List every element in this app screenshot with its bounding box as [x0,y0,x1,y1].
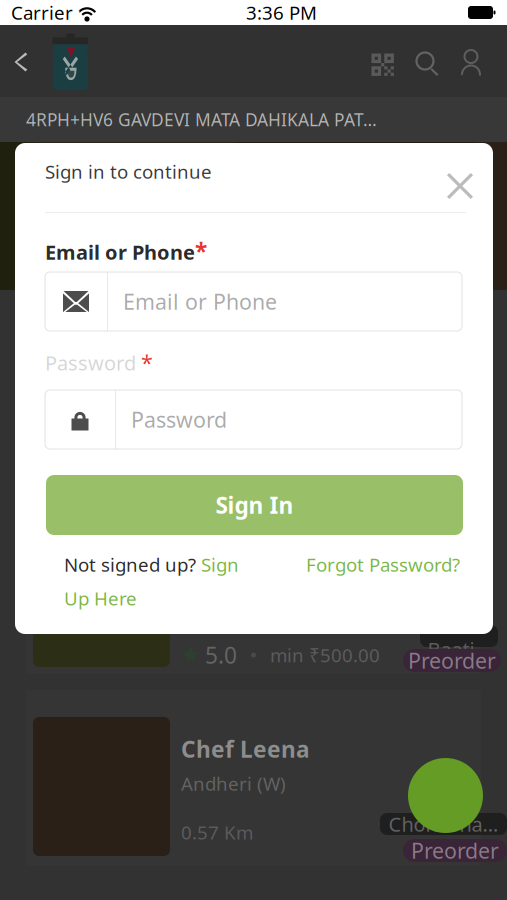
staticText: Email or Phone [45,239,195,265]
button[interactable]: Close [447,173,473,199]
staticText: Password [45,349,141,376]
button[interactable]: Forgot Password? [306,552,460,577]
button[interactable]: Back [7,41,35,83]
staticText: Password [131,405,227,434]
button[interactable]: Scan QR code [363,45,403,85]
staticText: Preorder [408,646,496,675]
button[interactable]: Search [406,43,450,85]
staticText: Chole Bha… [388,811,498,837]
staticText: 3:36 PM [246,0,317,25]
staticText: * [195,236,207,266]
staticText: 5.0 [205,640,237,670]
button[interactable]: Add [408,758,483,833]
button[interactable]: Account [452,42,490,84]
staticText: Sign In [215,490,293,520]
staticText: Not signed up? [64,552,201,577]
staticText: min ₹500.00 [270,643,380,667]
staticText: Forgot Password? [306,552,460,577]
staticText: 0.57 Km [181,820,253,845]
staticText: Chef Leena [181,734,310,764]
staticText: 4RPH+HV6 GAVDEVI MATA DAHIKALA PAT… [26,108,377,131]
staticText: Email or Phone [123,287,277,316]
staticText: Up Here [64,586,137,611]
staticText: Sign [201,552,239,577]
staticText: Preorder [411,836,499,865]
button[interactable]: Sign In [46,475,463,535]
staticText: Sign in to continue [45,159,212,184]
staticText: Carrier [11,0,73,25]
button[interactable]: Up Here [64,586,137,611]
staticText: * [141,348,153,376]
button[interactable]: Sign [201,552,239,577]
button[interactable]: Sign in to continue [45,159,212,184]
button[interactable]: Home [51,33,90,95]
staticText: Dal Baati… [427,609,490,662]
staticText: Andheri (W) [181,771,286,796]
